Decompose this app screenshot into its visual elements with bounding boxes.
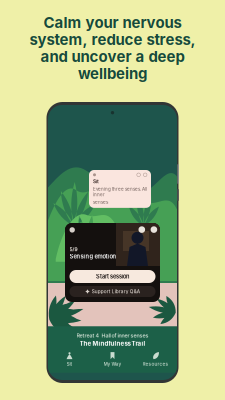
staticText: 5/9 — [69, 246, 77, 252]
button[interactable]: Home — [66, 224, 78, 236]
button[interactable]: Sit — [48, 352, 91, 367]
staticText: Start session — [96, 273, 129, 280]
staticText: senses — [93, 199, 108, 205]
staticText: Sit — [93, 179, 99, 184]
staticText: My Way — [103, 361, 121, 367]
button[interactable]: Start session — [69, 270, 155, 283]
staticText: Sensing emotion — [69, 253, 116, 260]
staticText: Sit — [66, 361, 72, 367]
staticText: Support Library Q&A — [92, 289, 140, 294]
staticText: Retreat 4 Hall of inner senses — [76, 332, 148, 339]
staticText: Evening three senses. All inner — [93, 186, 147, 197]
staticText: wellbeing — [78, 64, 147, 83]
button[interactable]: Timer — [137, 225, 147, 234]
staticText: The Mindfulness Trail — [79, 340, 145, 347]
staticText: Calm your nervous — [43, 13, 181, 32]
button[interactable]: Resources — [134, 352, 177, 367]
button[interactable]: Sit — [89, 170, 151, 208]
button[interactable]: Support Library Q&A — [69, 286, 155, 297]
staticText: system, reduce stress, — [29, 30, 195, 49]
button[interactable]: Bookmark — [149, 225, 159, 234]
staticText: Resources — [142, 361, 168, 367]
button[interactable]: My Way — [91, 352, 134, 367]
staticText: and uncover a deep — [40, 47, 184, 66]
